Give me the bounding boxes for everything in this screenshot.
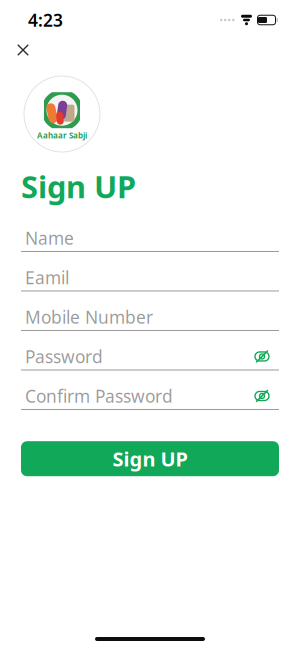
staticText: Mobile Number (25, 305, 153, 328)
staticText: Sign UP (112, 445, 187, 472)
staticText: Aahaar Sabji (37, 130, 87, 141)
staticText: Eamil (25, 266, 69, 289)
staticText: Sign UP (21, 166, 136, 207)
button[interactable]: Show password (249, 345, 275, 367)
button[interactable]: Show password (249, 385, 275, 407)
button[interactable]: Close (7, 34, 39, 66)
staticText: Confirm Password (25, 384, 173, 407)
button[interactable]: Sign UP (21, 441, 279, 476)
staticText: 4:23 (28, 8, 63, 31)
staticText: Name (25, 226, 74, 249)
staticText: Password (25, 345, 103, 368)
